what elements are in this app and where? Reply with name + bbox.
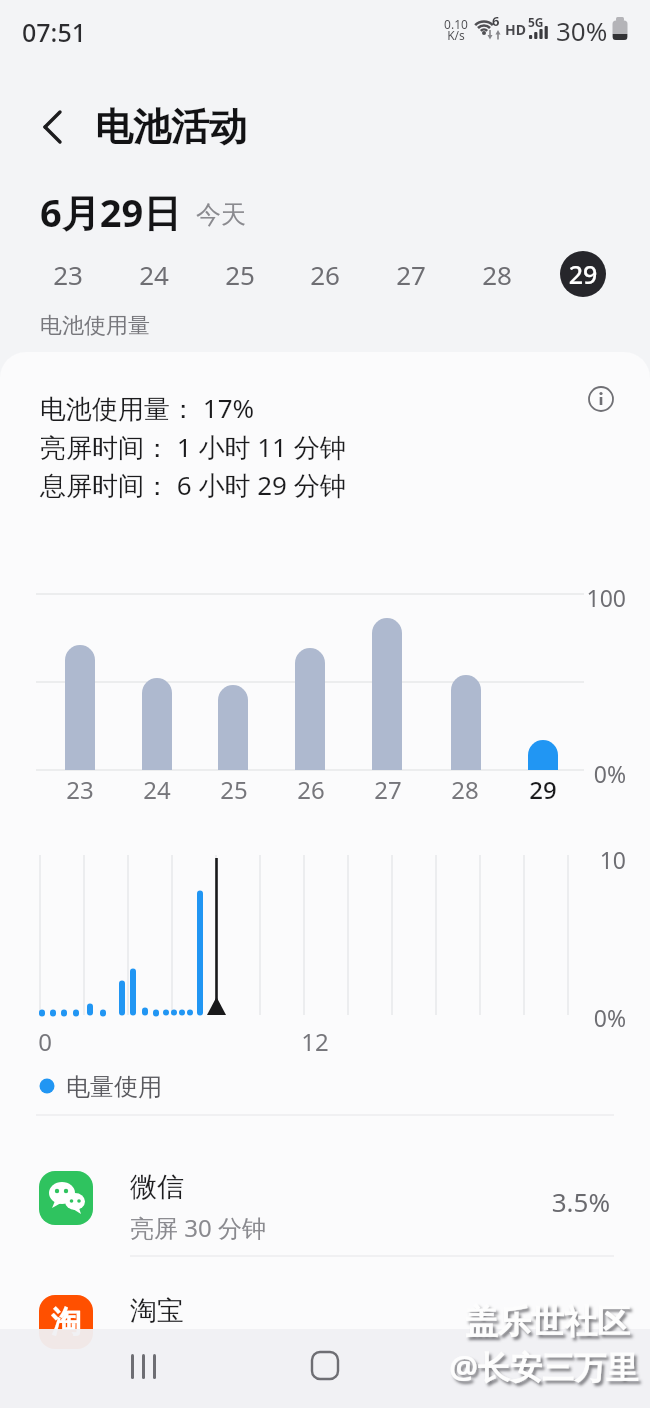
button[interactable] (305, 1345, 345, 1385)
staticText: 0 (30, 1025, 60, 1058)
staticText: 淘 (39, 1303, 93, 1341)
staticText: 0.10 (437, 16, 475, 32)
staticText: 盖乐世社区 (455, 1301, 630, 1343)
staticText: 5G (528, 14, 544, 30)
staticText: 电池使用量： 17% (40, 390, 255, 426)
staticText: 淘宝 (130, 1294, 184, 1328)
staticText: 息屏时间： 6 小时 29 分钟 (40, 467, 346, 503)
staticText: 今天 (196, 199, 246, 230)
button[interactable]: 23 (38, 257, 98, 292)
staticText: 6月29日 (40, 186, 182, 238)
button[interactable] (40, 106, 70, 148)
staticText: 电量使用 (66, 1072, 162, 1102)
button[interactable] (0, 1276, 650, 1382)
staticText: 07:51 (22, 15, 87, 49)
staticText: K/s (437, 27, 475, 43)
staticText: 23 (50, 773, 110, 806)
staticText: 12 (300, 1025, 330, 1058)
staticText: 100 (574, 582, 626, 613)
staticText: 电池活动 (95, 103, 247, 151)
staticText: 29 (560, 257, 606, 291)
staticText: 0% (574, 1002, 626, 1033)
staticText: 24 (127, 773, 187, 806)
staticText: 亮屏时间： 1 小时 11 分钟 (40, 429, 346, 465)
staticText: 微信 (130, 1170, 184, 1204)
button[interactable]: 28 (467, 257, 527, 292)
staticText: HD (505, 20, 526, 39)
staticText: 26 (281, 773, 341, 806)
button[interactable]: 29 (560, 251, 606, 297)
button[interactable] (124, 1348, 164, 1384)
staticText: 27 (358, 773, 418, 806)
staticText: 29 (513, 773, 573, 806)
staticText: 30% (556, 13, 608, 48)
staticText: 亮屏 30 分钟 (130, 1211, 266, 1244)
staticText: 0% (574, 758, 626, 789)
button[interactable] (0, 1150, 650, 1256)
button[interactable]: 25 (210, 257, 270, 292)
button[interactable]: 24 (124, 257, 184, 292)
staticText: 10 (574, 844, 626, 875)
staticText: 3.5% (500, 1184, 610, 1219)
button[interactable]: 27 (381, 257, 441, 292)
staticText: 28 (435, 773, 495, 806)
staticText: 电池使用量 (40, 312, 150, 340)
staticText: @长安三万里 (448, 1345, 638, 1389)
staticText: 25 (204, 773, 264, 806)
button[interactable] (588, 386, 614, 412)
staticText: 6 (492, 12, 500, 30)
button[interactable]: 26 (295, 257, 355, 292)
